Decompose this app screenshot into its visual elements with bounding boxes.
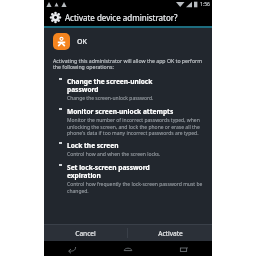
staticText: 1:56 [200, 1, 210, 8]
staticText: Change the screen-unlock password [67, 77, 153, 94]
staticText: OK [77, 37, 87, 47]
staticText: Lock the screen [67, 141, 119, 150]
staticText: Monitor the number of incorrect password… [67, 117, 203, 136]
staticText: Control how frequently the lock-screen p… [67, 181, 203, 194]
button[interactable]: Home [100, 241, 156, 256]
staticText: Change the screen-unlock password. [67, 95, 154, 102]
staticText: Set lock-screen password expiration [67, 163, 150, 180]
button[interactable]: Cancel [44, 225, 127, 241]
staticText: Cancel [75, 229, 96, 238]
button[interactable]: Activate [128, 225, 212, 241]
staticText: Activate [158, 229, 183, 238]
staticText: Activate device administrator? [65, 12, 178, 23]
button[interactable]: Back [44, 241, 100, 256]
staticText: Control how and when the screen locks. [67, 151, 161, 158]
staticText: Monitor screen-unlock attempts [67, 107, 174, 116]
staticText: Activating this administrator will allow… [53, 57, 203, 71]
button[interactable]: Recent apps [156, 241, 212, 256]
